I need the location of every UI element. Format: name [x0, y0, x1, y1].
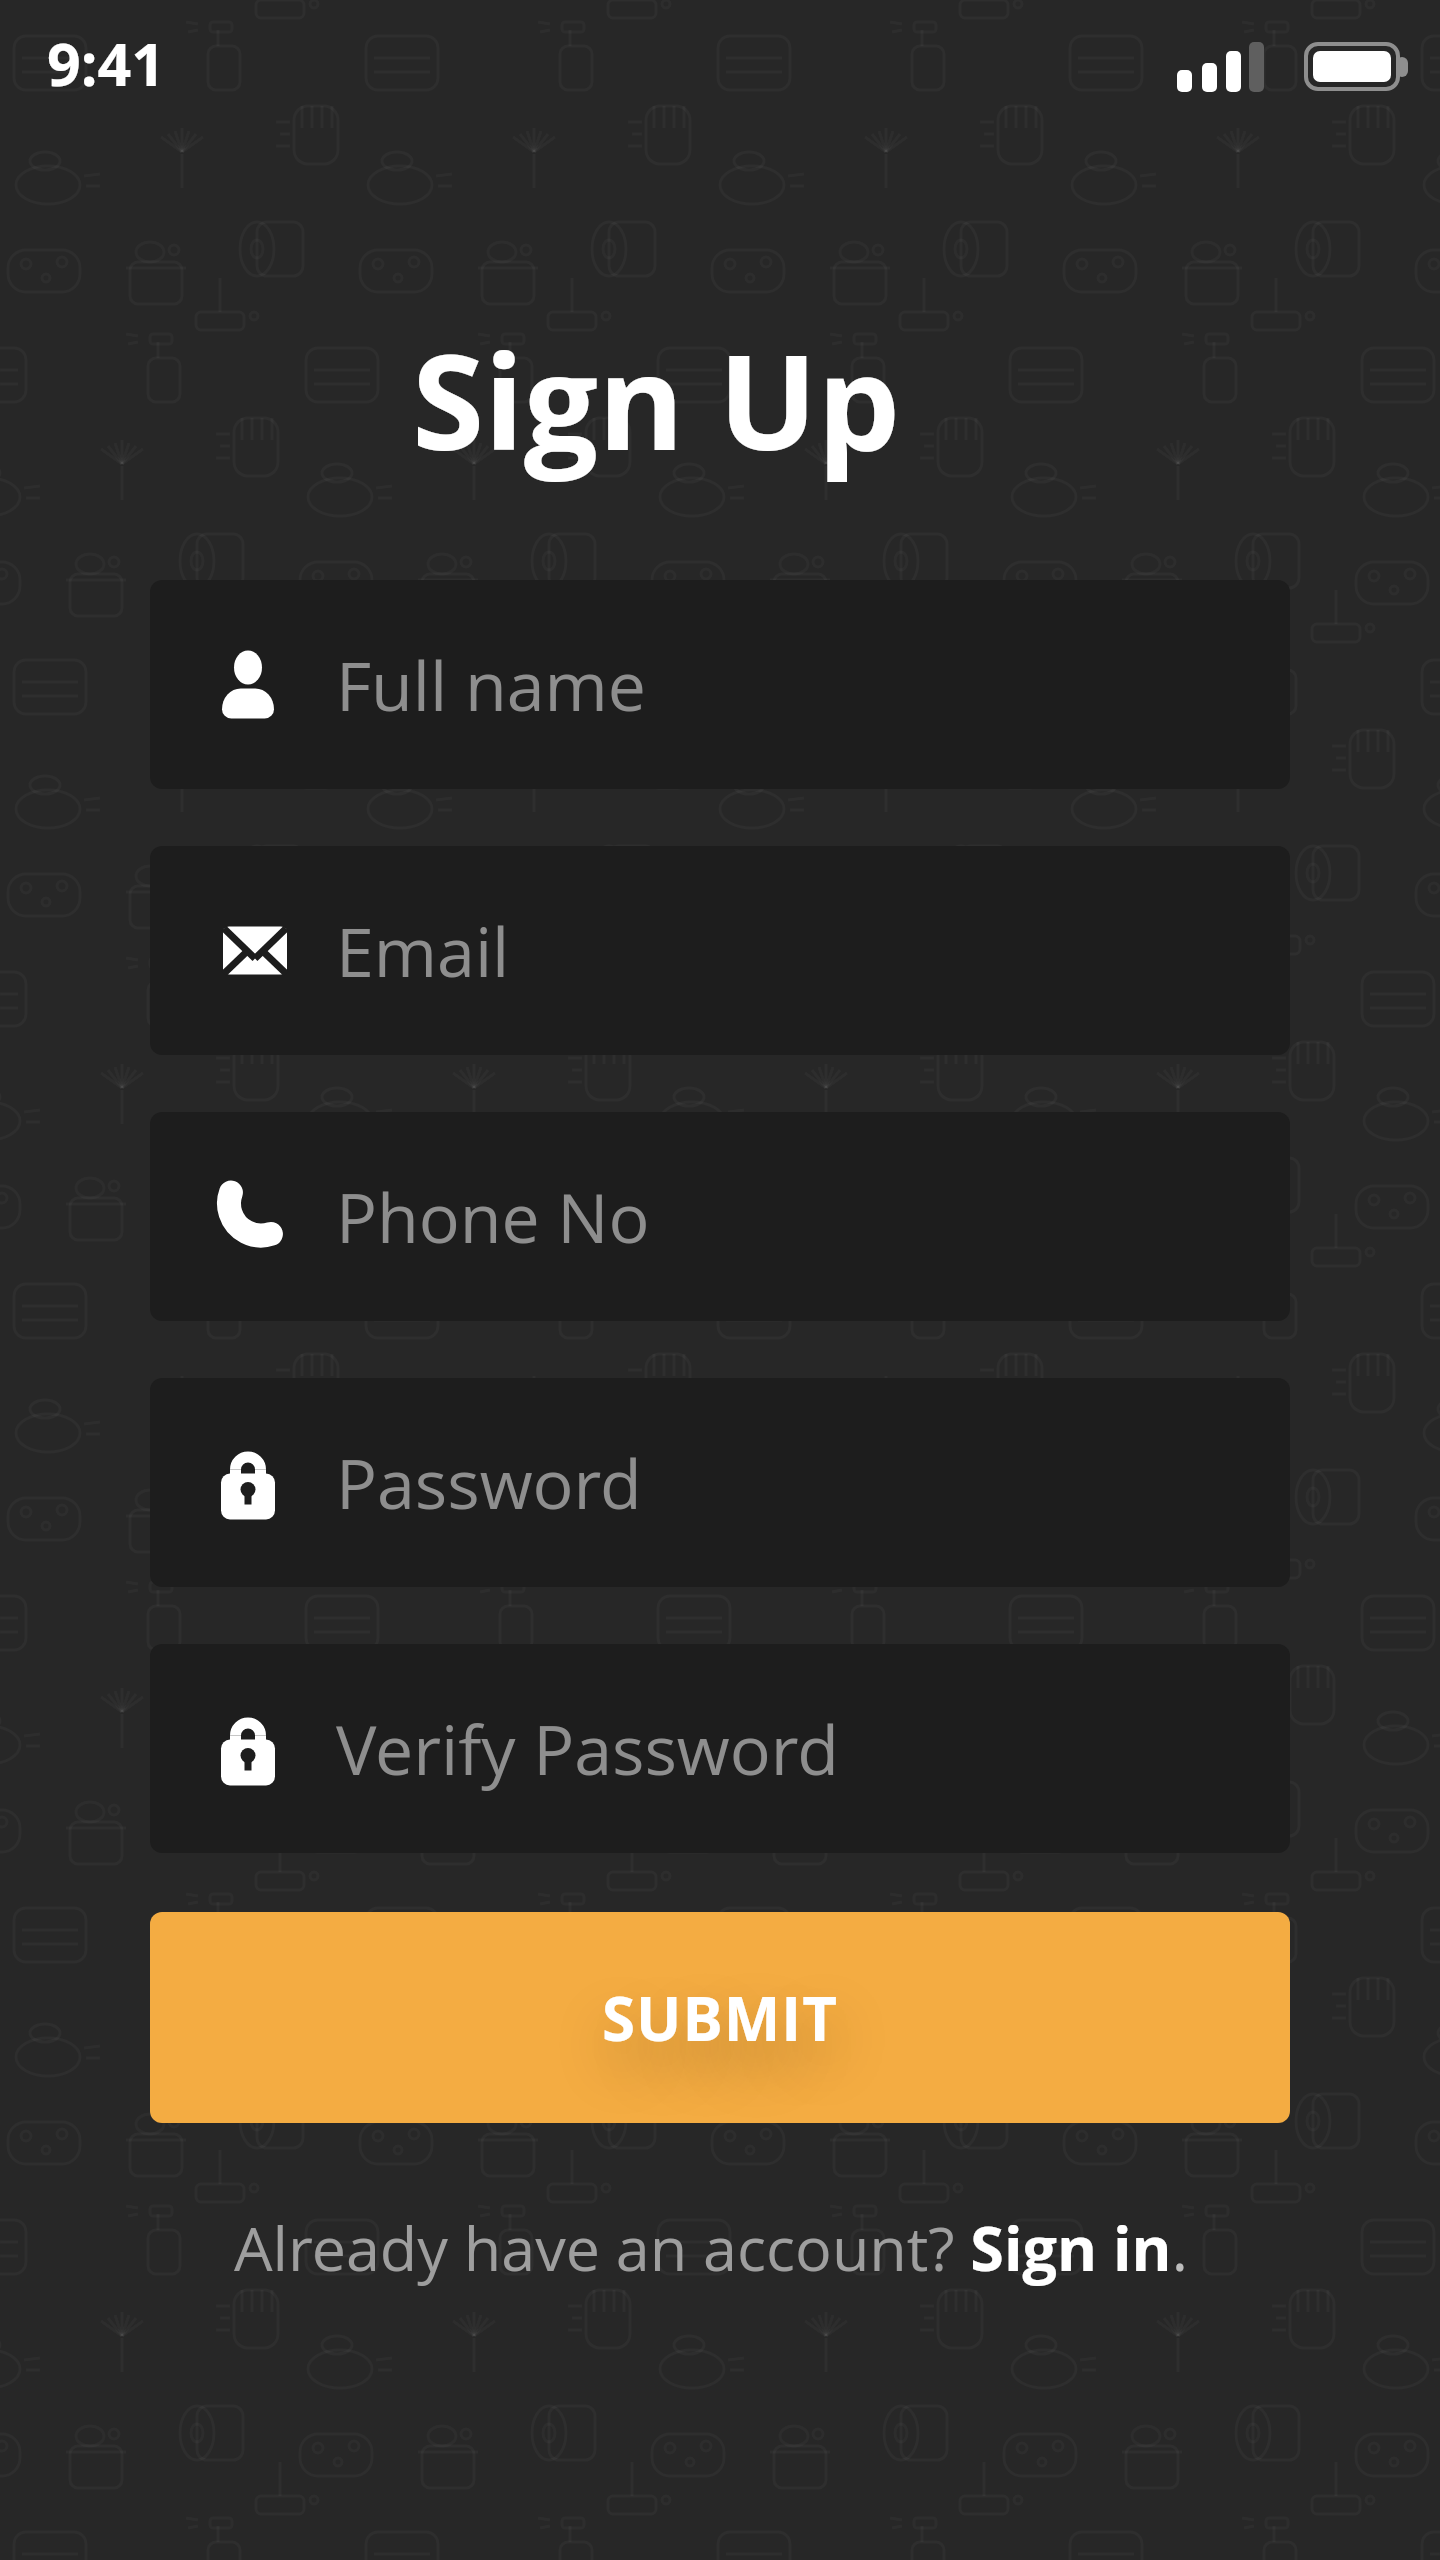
- button[interactable]: Phone No: [150, 1112, 1290, 1321]
- staticText: Phone No: [336, 1170, 650, 1263]
- staticText: Full name: [336, 638, 646, 731]
- staticText: Password: [336, 1436, 642, 1529]
- staticText: Verify Password: [336, 1702, 839, 1795]
- staticText: SUBMIT: [602, 1977, 838, 2059]
- button[interactable]: Email: [150, 846, 1290, 1055]
- button[interactable]: Already have an account? Sign in.: [234, 2206, 1188, 2289]
- staticText: Sign Up: [0, 310, 1376, 488]
- button[interactable]: SUBMIT: [150, 1912, 1290, 2123]
- staticText: 9:41: [47, 23, 165, 103]
- button[interactable]: Password: [150, 1378, 1290, 1587]
- staticText: Email: [336, 904, 510, 997]
- button[interactable]: Verify Password: [150, 1644, 1290, 1853]
- button[interactable]: Full name: [150, 580, 1290, 789]
